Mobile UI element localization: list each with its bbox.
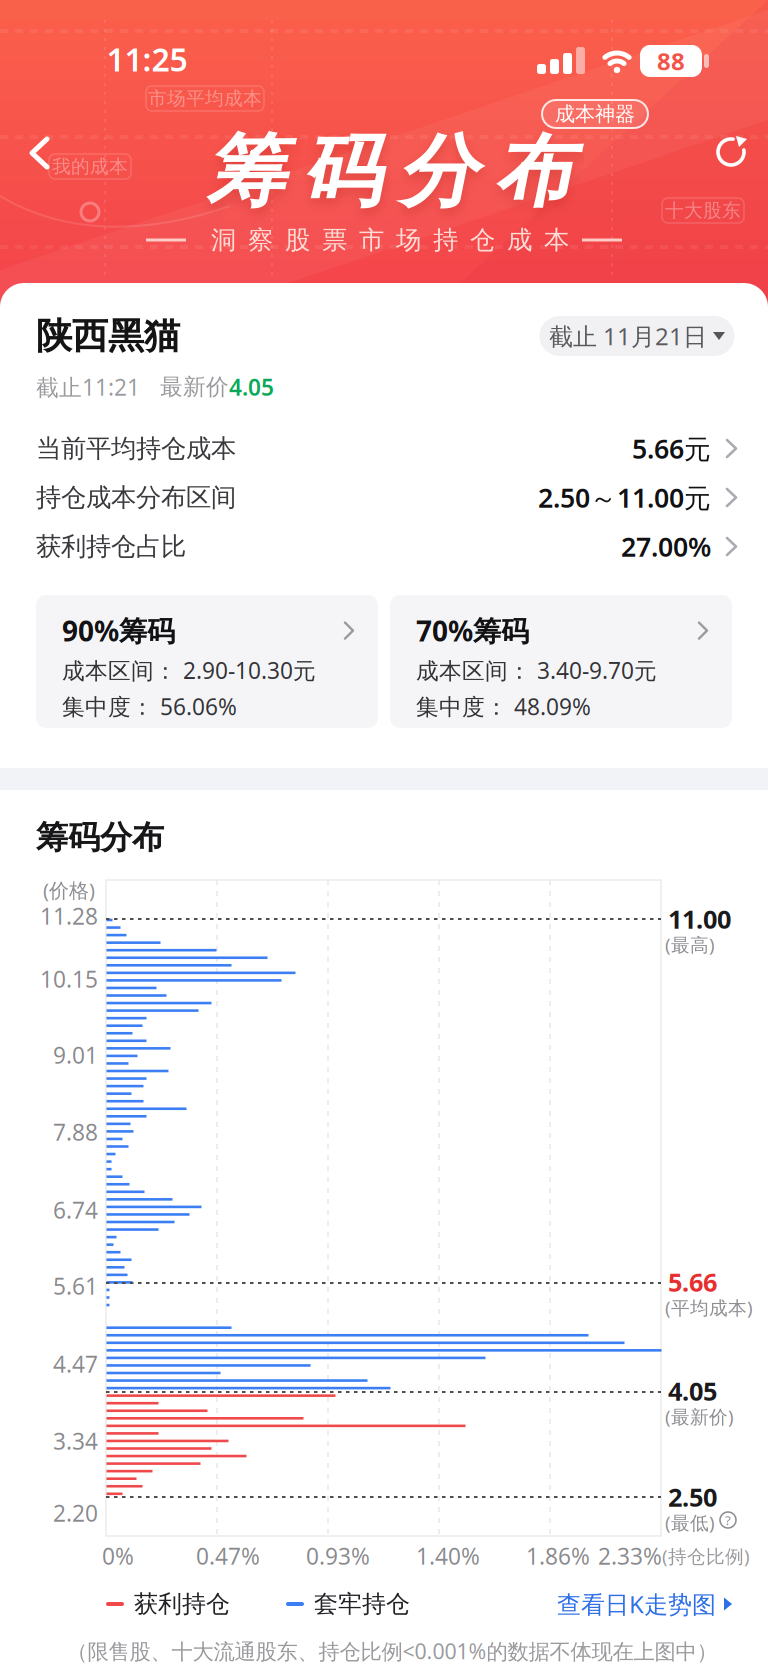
staticText: 2.50～11.00元 — [538, 480, 711, 515]
staticText: 27.00% — [621, 529, 711, 564]
button[interactable]: 90%筹码 — [36, 595, 378, 728]
staticText: (最低) — [665, 1510, 715, 1535]
staticText: 我的成本 — [52, 155, 128, 178]
button[interactable]: 截止 11月21日 — [539, 316, 734, 356]
staticText: 90%筹码 — [62, 612, 175, 649]
button[interactable]: 当前平均持仓成本 — [0, 424, 768, 473]
staticText: 集中度： 56.06% — [62, 691, 237, 721]
staticText: 5.66元 — [632, 431, 711, 466]
staticText: 获利持仓 — [134, 1589, 230, 1619]
staticText: 集中度： 48.09% — [416, 691, 591, 721]
staticText: 2.20 — [53, 1498, 98, 1528]
staticText: 7.88 — [53, 1117, 98, 1147]
staticText: (最高) — [665, 932, 715, 957]
staticText: 4.05 — [668, 1374, 717, 1408]
staticText: 当前平均持仓成本 — [36, 433, 236, 464]
staticText: 十大股东 — [665, 199, 741, 222]
staticText: 陕西黑猫 — [36, 314, 180, 358]
staticText: 5.66 — [668, 1265, 717, 1299]
staticText: 最新价 — [160, 373, 229, 401]
button[interactable]: 说明 — [719, 1511, 737, 1529]
staticText: (平均成本) — [665, 1295, 753, 1320]
button[interactable]: 查看日K走势图 — [557, 1588, 732, 1620]
staticText: 11.00 — [668, 902, 731, 936]
staticText: 4.05 — [229, 372, 274, 402]
staticText: (价格) — [43, 877, 95, 903]
staticText: 1.86% — [526, 1541, 590, 1571]
staticText: 0.47% — [196, 1541, 260, 1571]
staticText: 市场平均成本 — [148, 87, 262, 110]
staticText: 筹码分布 — [36, 818, 164, 857]
staticText: 6.74 — [53, 1195, 98, 1225]
button[interactable]: Back — [17, 124, 63, 182]
staticText: 88 — [657, 45, 685, 77]
staticText: 洞察股票市场持仓成本 — [211, 224, 569, 255]
staticText: 套牢持仓 — [314, 1589, 410, 1619]
button[interactable]: 获利持仓占比 — [0, 522, 768, 571]
staticText: 2.50 — [668, 1480, 717, 1514]
staticText: 成本区间： 2.90-10.30元 — [62, 655, 316, 685]
staticText: 1.40% — [416, 1541, 480, 1571]
staticText: 11:25 — [106, 38, 187, 80]
staticText: 成本神器 — [555, 102, 635, 126]
staticText: 10.15 — [40, 964, 98, 994]
staticText: 截止 11月21日 — [549, 320, 707, 352]
staticText: 持仓成本分布区间 — [36, 482, 236, 513]
staticText: 3.34 — [53, 1426, 98, 1456]
staticText: 截止11:21 — [36, 372, 140, 402]
button[interactable]: Refresh — [706, 126, 758, 178]
staticText: ? — [725, 1511, 731, 1529]
staticText: 查看日K走势图 — [557, 1588, 716, 1620]
staticText: 2.33% — [598, 1541, 662, 1571]
staticText: 0.93% — [306, 1541, 370, 1571]
staticText: 9.01 — [53, 1040, 98, 1070]
staticText: 5.61 — [53, 1271, 98, 1301]
staticText: 获利持仓占比 — [36, 531, 186, 562]
staticText: (持仓比例) — [662, 1544, 750, 1568]
staticText: (最新价) — [665, 1404, 734, 1429]
staticText: 0% — [102, 1541, 134, 1571]
button[interactable]: 70%筹码 — [390, 595, 732, 728]
staticText: 成本区间： 3.40-9.70元 — [416, 655, 657, 685]
staticText: 70%筹码 — [416, 612, 529, 649]
staticText: 11.28 — [40, 901, 98, 931]
button[interactable]: 持仓成本分布区间 — [0, 473, 768, 522]
staticText: （限售股、十大流通股东、持仓比例<0.001%的数据不体现在上图中） — [66, 1637, 717, 1665]
staticText: 筹码分布 — [206, 124, 573, 220]
staticText: 4.47 — [53, 1349, 98, 1379]
